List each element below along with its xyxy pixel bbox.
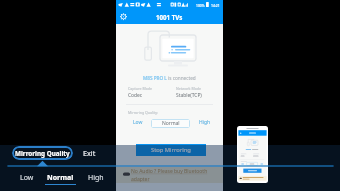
- button[interactable]: Low: [16, 173, 37, 182]
- staticText: Stop Mirroring: [151, 146, 191, 154]
- staticText: High: [199, 119, 211, 126]
- staticText: High: [88, 173, 104, 182]
- staticText: Stable(TCP): [176, 92, 202, 99]
- button[interactable]: Settings: [118, 12, 129, 23]
- button[interactable]: Normal: [151, 119, 190, 128]
- button[interactable]: Stop Mirroring: [136, 144, 206, 156]
- staticText: Exit: [83, 148, 96, 158]
- staticText: Low: [20, 173, 34, 182]
- staticText: Network Mode: [176, 86, 202, 91]
- button[interactable]: High: [194, 118, 215, 127]
- staticText: Codec: [128, 92, 143, 99]
- button[interactable]: Exit: [79, 146, 99, 160]
- staticText: Normal: [162, 120, 180, 127]
- staticText: No Audio ? Please buy Bluetooth adapter: [131, 168, 216, 182]
- staticText: Low: [133, 119, 143, 126]
- staticText: 100%: [196, 3, 205, 7]
- staticText: Capture Mode: [128, 86, 153, 91]
- button[interactable]: Normal: [45, 173, 76, 185]
- button[interactable]: High: [85, 173, 106, 182]
- button[interactable]: Low: [127, 118, 148, 127]
- staticText: 14:21: [211, 3, 220, 8]
- staticText: 1001 TVs: [156, 13, 183, 21]
- staticText: M8S PRO L is connected: [143, 75, 196, 81]
- button[interactable]: Device preview: [237, 126, 268, 183]
- staticText: Mirroring Quality: [15, 149, 70, 158]
- button[interactable]: No Audio ? Please buy Bluetooth adapter: [116, 167, 223, 183]
- button[interactable]: Mirroring Quality: [12, 146, 73, 160]
- staticText: Normal: [47, 173, 74, 182]
- staticText: Mirroring Quality:: [128, 110, 159, 115]
